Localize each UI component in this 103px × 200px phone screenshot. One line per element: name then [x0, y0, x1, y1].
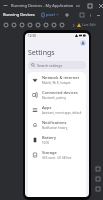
- button[interactable]: Battery: [28, 132, 86, 147]
- staticText: Notifications: [42, 120, 67, 125]
- button[interactable]: Layout inspector: [93, 174, 102, 183]
- staticText: 12:30: [28, 34, 36, 38]
- button[interactable]: Volume up: [10, 21, 18, 29]
- button[interactable]: Connected devices: [28, 87, 86, 102]
- button[interactable]: Running Devices: [3, 12, 35, 17]
- staticText: Search settings: [37, 63, 63, 68]
- button[interactable]: close: [98, 2, 103, 9]
- staticText: Storage: [42, 150, 57, 155]
- button[interactable]: Network & internet: [28, 72, 86, 87]
- staticText: Running Devices: [3, 12, 35, 17]
- staticText: 100%: [42, 141, 50, 145]
- button[interactable]: Volume down: [18, 21, 26, 29]
- button[interactable]: Screenshot: [93, 184, 102, 193]
- staticText: 36% used - 3.8 GB free: [42, 156, 72, 160]
- staticText: Battery: [42, 135, 57, 140]
- button[interactable]: Notifications: [28, 117, 86, 132]
- button[interactable]: Search settings: [28, 61, 86, 69]
- staticText: Running Devices - My Application: [11, 3, 74, 8]
- button[interactable]: Apps: [28, 102, 86, 117]
- staticText: Notification history, conversations: [42, 126, 82, 130]
- button[interactable]: Recents: [58, 21, 66, 29]
- button[interactable]: min: [74, 2, 81, 9]
- button[interactable]: Power: [2, 21, 10, 29]
- button[interactable]: Back: [42, 21, 50, 29]
- button[interactable]: Rotate left: [26, 21, 34, 29]
- staticText: pixel: [46, 12, 55, 17]
- button[interactable]: More options: [87, 12, 93, 18]
- staticText: Apps: [42, 105, 52, 110]
- staticText: Assistant, recent apps, default apps: [42, 111, 82, 115]
- button[interactable]: More: [69, 21, 77, 29]
- button[interactable]: Pan: [93, 164, 102, 173]
- staticText: Settings: [28, 48, 55, 58]
- staticText: Network & internet: [42, 75, 80, 80]
- button[interactable]: Storage: [28, 147, 86, 162]
- button[interactable]: Home: [50, 21, 58, 29]
- button[interactable]: Account: [80, 40, 86, 46]
- button[interactable]: Rotate right: [34, 21, 42, 29]
- staticText: Live Edit disabled: [82, 22, 103, 27]
- button[interactable]: Add device: [63, 11, 70, 18]
- button[interactable]: max: [86, 2, 93, 9]
- staticText: Bluetooth, pairing: [42, 96, 66, 100]
- button[interactable]: Settings: [78, 11, 85, 18]
- button[interactable]: Hide: [95, 12, 101, 18]
- staticText: Mobile, Wi-Fi, hotspot: [42, 81, 71, 85]
- staticText: Connected devices: [42, 90, 78, 95]
- button[interactable]: pixel: [41, 12, 59, 17]
